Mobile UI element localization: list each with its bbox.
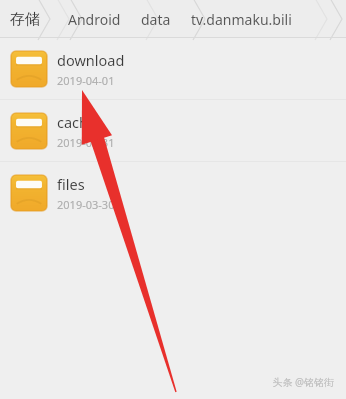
staticText: 存储 [10, 10, 40, 29]
button[interactable]: Folder [0, 162, 346, 223]
button[interactable]: data [139, 4, 173, 35]
staticText: data [141, 10, 171, 29]
staticText: cache [57, 112, 97, 132]
staticText: Android [68, 10, 121, 29]
other: Folder [11, 175, 47, 211]
staticText: files [57, 174, 85, 194]
staticText: 头条 @铭铭街 [272, 375, 334, 389]
staticText: tv.danmaku.bili [191, 10, 292, 29]
staticText: 2019-03-30 [57, 197, 115, 212]
button[interactable]: tv.danmaku.bili [189, 4, 294, 35]
button[interactable]: 存储 [8, 4, 42, 35]
other: Folder [11, 113, 47, 149]
button[interactable]: Android [66, 4, 123, 35]
staticText: 2019-04-01 [57, 73, 115, 88]
button[interactable]: Folder [0, 38, 346, 99]
staticText: 2019-03-31 [57, 135, 115, 150]
button[interactable]: Folder [0, 100, 346, 161]
other: Folder [11, 51, 47, 87]
staticText: download [57, 50, 125, 70]
